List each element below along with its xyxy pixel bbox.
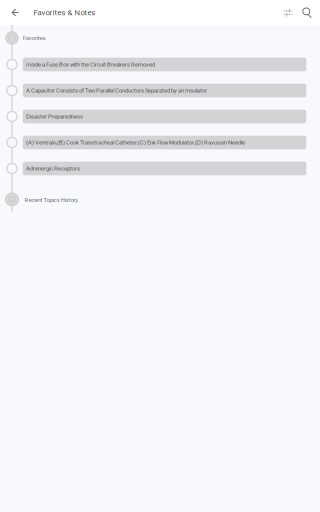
- button[interactable]: Disaster Preparedness: [23, 110, 306, 123]
- button[interactable]: Inside a Fuse Box with the Circuit Break…: [23, 58, 306, 71]
- button[interactable]: Search: [297, 1, 317, 26]
- staticText: Adrenergic Receptors: [26, 165, 80, 172]
- staticText: Favorites & Notes: [33, 8, 95, 17]
- staticText: Favorites: [23, 35, 46, 41]
- button[interactable]: Adrenergic Receptors: [23, 162, 306, 175]
- button[interactable]: Favorites: [5, 31, 125, 45]
- staticText: A Capacitor Consists of Two Parallel Con…: [26, 87, 207, 94]
- button[interactable]: A Capacitor Consists of Two Parallel Con…: [23, 84, 306, 97]
- button[interactable]: Recent Topics History: [5, 192, 125, 206]
- button[interactable]: (A) Ventrain,(B) Cook Transtracheal Cath…: [23, 136, 306, 149]
- button[interactable]: Filter: [278, 0, 298, 25]
- button[interactable]: Back: [4, 0, 26, 25]
- staticText: (A) Ventrain,(B) Cook Transtracheal Cath…: [26, 139, 245, 146]
- staticText: Disaster Preparedness: [26, 113, 83, 120]
- staticText: Recent Topics History: [24, 197, 78, 203]
- staticText: Inside a Fuse Box with the Circuit Break…: [26, 61, 155, 68]
